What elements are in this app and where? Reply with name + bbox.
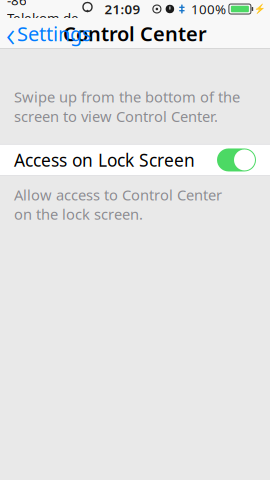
staticText: ⚡ [254,4,266,14]
staticText: 100% [191,0,226,18]
button[interactable]: ‹ [0,18,100,49]
staticText: Settings [17,20,92,47]
button[interactable]: Access on Lock Screen [0,144,270,176]
staticText: -86 Telekom.de [7,0,79,27]
staticText: ‹ [6,10,15,56]
staticText: Access on Lock Screen [14,148,195,171]
staticText: Allow access to Control Center on the lo… [14,185,222,224]
staticText: Control Center [63,20,207,47]
staticText: Swipe up from the bottom of the screen t… [14,87,240,126]
staticText: 21:09 [104,0,140,18]
